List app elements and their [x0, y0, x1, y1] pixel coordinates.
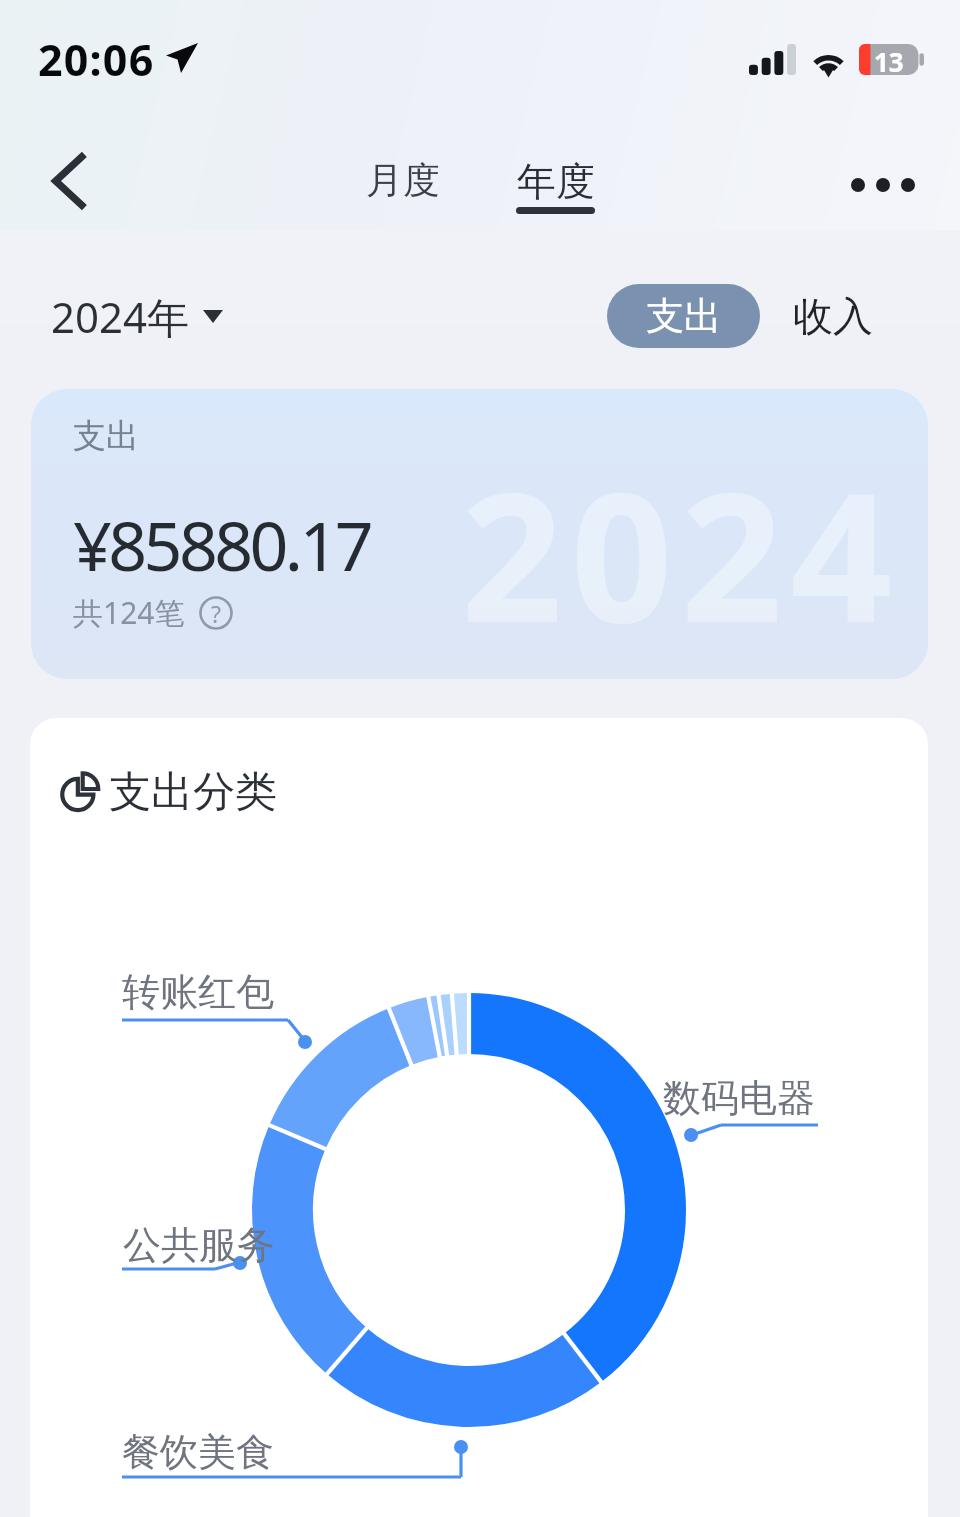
button[interactable]: 2024	[31, 389, 928, 679]
staticText: 餐饮美食	[122, 1428, 274, 1476]
button[interactable]: More options	[845, 147, 921, 223]
button[interactable]: 支出	[607, 284, 760, 348]
button[interactable]: Info	[199, 596, 233, 630]
staticText: 13	[874, 44, 904, 75]
button[interactable]: 月度	[356, 151, 450, 210]
staticText: ?	[211, 598, 221, 629]
staticText: 年度	[517, 157, 595, 206]
staticText: 支出	[646, 292, 722, 340]
staticText: ¥85880.17	[73, 498, 370, 591]
staticText: 共124笔	[73, 592, 185, 633]
staticText: 2024	[461, 432, 901, 674]
button[interactable]: 2024年	[51, 288, 223, 345]
staticText: 2024年	[51, 288, 190, 345]
staticText: 20:06	[38, 30, 155, 89]
staticText: 转账红包	[122, 968, 274, 1016]
staticText: 公共服务	[123, 1221, 275, 1269]
staticText: 数码电器	[663, 1074, 815, 1122]
staticText: 收入	[793, 291, 873, 341]
button[interactable]: 年度	[506, 151, 605, 220]
staticText: 支出	[73, 415, 139, 457]
button[interactable]: Back	[29, 147, 105, 223]
staticText: 月度	[366, 157, 440, 204]
staticText: 支出分类	[109, 766, 277, 819]
button[interactable]: 收入	[787, 279, 879, 353]
